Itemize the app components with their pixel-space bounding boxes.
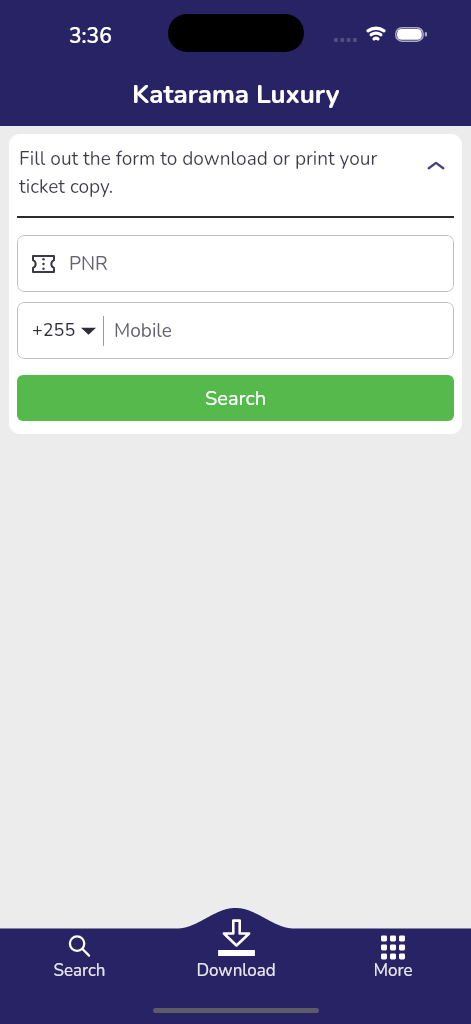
staticText: Search xyxy=(53,959,106,982)
button[interactable]: Search xyxy=(17,375,454,421)
staticText: 3:36 xyxy=(69,22,112,51)
staticText: Search xyxy=(205,385,267,412)
button[interactable]: Download xyxy=(171,908,301,992)
staticText: Fill out the form to download or print y… xyxy=(19,146,410,199)
button[interactable]: Collapse section xyxy=(418,148,454,184)
staticText: More xyxy=(373,959,413,982)
staticText: +255 xyxy=(32,318,76,343)
button[interactable]: Search xyxy=(14,908,144,992)
staticText: PNR xyxy=(69,251,108,277)
staticText: Download xyxy=(196,959,276,982)
staticText: Mobile xyxy=(114,318,172,344)
button[interactable]: +255 xyxy=(17,302,454,359)
button[interactable]: PNR xyxy=(17,235,454,292)
staticText: Katarama Luxury xyxy=(132,77,340,112)
button[interactable]: More xyxy=(328,908,458,992)
